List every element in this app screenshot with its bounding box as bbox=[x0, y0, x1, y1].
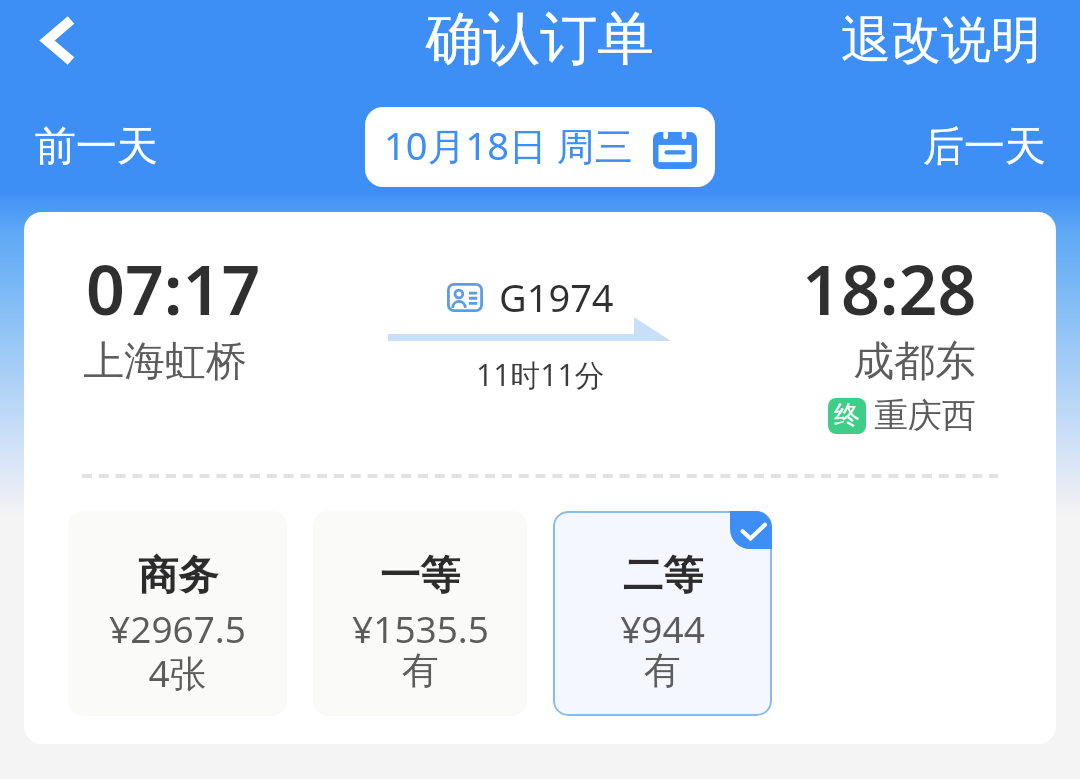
staticText: 二等 bbox=[623, 550, 703, 600]
staticText: 前一天 bbox=[35, 121, 158, 173]
staticText: 07:17 bbox=[86, 242, 261, 335]
staticText: 确认订单 bbox=[426, 3, 654, 75]
staticText: 成都东 bbox=[853, 336, 976, 388]
staticText: ¥2967.5 bbox=[109, 603, 246, 653]
staticText: 10月18日 周三 bbox=[384, 119, 633, 171]
staticText: ¥944 bbox=[620, 603, 705, 653]
staticText: 一等 bbox=[380, 550, 460, 600]
staticText: 4张 bbox=[148, 647, 207, 698]
staticText: 上海虹桥 bbox=[83, 336, 247, 388]
staticText: 11时11分 bbox=[476, 354, 605, 395]
button[interactable]: Back bbox=[19, 4, 99, 84]
staticText: 重庆西 bbox=[874, 394, 976, 437]
button[interactable]: 商务 bbox=[68, 511, 287, 716]
staticText: 退改说明 bbox=[841, 9, 1041, 72]
staticText: 18:28 bbox=[802, 242, 977, 335]
button[interactable]: 二等 bbox=[553, 511, 772, 716]
button[interactable]: 后一天 bbox=[903, 109, 1080, 195]
staticText: 商务 bbox=[138, 550, 218, 600]
staticText: 后一天 bbox=[923, 121, 1046, 173]
staticText: 有 bbox=[402, 647, 439, 694]
button[interactable]: 一等 bbox=[313, 511, 527, 716]
staticText: 终 bbox=[834, 399, 860, 432]
staticText: 有 bbox=[644, 647, 681, 694]
button[interactable]: 前一天 bbox=[0, 109, 178, 195]
staticText: ¥1535.5 bbox=[352, 603, 489, 653]
button[interactable]: 10月18日 周三 bbox=[365, 107, 715, 187]
button[interactable]: 退改说明 bbox=[821, 0, 1080, 82]
staticText: G1974 bbox=[499, 271, 614, 323]
